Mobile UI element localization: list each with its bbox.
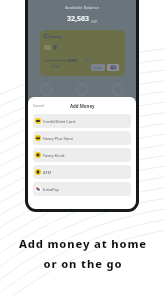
button[interactable]: Cancel <box>28 103 45 108</box>
staticText: 12/28 <box>51 65 60 69</box>
button[interactable]: ATM <box>33 165 131 179</box>
button[interactable]: Quick action <box>41 84 52 95</box>
staticText: •••• •••• •••• 3690 <box>45 58 77 64</box>
staticText: ATM <box>43 170 51 175</box>
button[interactable]: Quick action <box>112 84 123 95</box>
staticText: EGP <box>91 19 98 24</box>
staticText: Fawry Plus Store <box>43 136 74 141</box>
staticText: Add Money <box>70 103 95 109</box>
staticText: InstaPay <box>43 187 59 192</box>
staticText: Fawry <box>49 34 62 40</box>
staticText: meeza <box>94 66 102 70</box>
staticText: Available Balance <box>28 5 136 11</box>
staticText: Add money at home <box>0 236 166 251</box>
button[interactable]: Quick action <box>77 84 88 95</box>
button[interactable]: Fawry Kiosk <box>33 148 131 162</box>
button[interactable]: Credit/Debit Card <box>33 114 131 128</box>
staticText: Fawry Kiosk <box>43 153 65 158</box>
staticText: or on the go <box>0 256 166 271</box>
button[interactable]: Fawry Plus Store <box>33 131 131 145</box>
staticText: Credit/Debit Card <box>43 119 75 124</box>
staticText: 32,563 <box>67 14 90 24</box>
button[interactable]: InstaPay <box>33 182 131 196</box>
